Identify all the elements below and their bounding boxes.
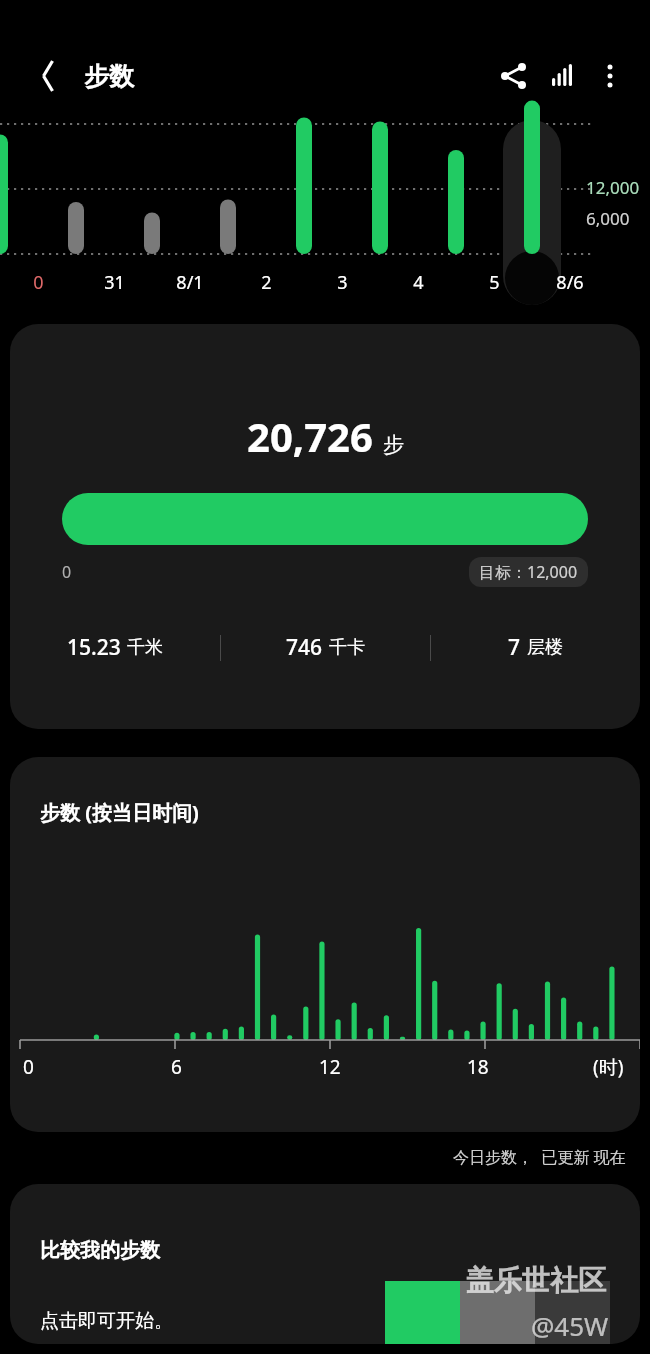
staticText: (时) xyxy=(593,1054,624,1080)
staticText: 5 xyxy=(489,270,500,295)
button[interactable]: Chart xyxy=(538,52,586,100)
button[interactable]: 步数 (按当日时间) xyxy=(10,757,640,1132)
staticText: 12 xyxy=(319,1054,341,1080)
staticText: 点击即可开始。 xyxy=(40,1309,173,1333)
staticText: 步数 (按当日时间) xyxy=(40,799,199,826)
staticText: 目标：12,000 xyxy=(479,561,578,583)
button[interactable]: Share xyxy=(490,52,538,100)
staticText: 8/6 xyxy=(556,270,584,295)
staticText: 步数 xyxy=(84,61,134,92)
staticText: 千米 xyxy=(127,636,163,659)
button[interactable]: 目标：12,000 xyxy=(479,561,578,583)
button[interactable]: 比较我的步数 xyxy=(10,1184,640,1344)
staticText: 15.23 xyxy=(67,633,121,662)
staticText: 0 xyxy=(23,1054,34,1080)
staticText: 6,000 xyxy=(586,207,630,230)
staticText: 31 xyxy=(104,270,125,295)
staticText: 0 xyxy=(33,270,44,295)
button[interactable]: 746 xyxy=(221,633,430,662)
staticText: 今日步数， 已更新 现在 xyxy=(453,1146,626,1168)
staticText: 4 xyxy=(413,270,424,295)
staticText: 746 xyxy=(286,633,323,662)
button[interactable]: 15.23 xyxy=(10,633,220,662)
staticText: 比较我的步数 xyxy=(40,1238,160,1263)
staticText: 3 xyxy=(337,270,348,295)
staticText: 步 xyxy=(383,432,404,458)
staticText: 20,726 xyxy=(247,409,373,463)
button[interactable]: 20,726 xyxy=(10,324,640,729)
staticText: 7 xyxy=(508,633,521,662)
staticText: 盖乐世社区 xyxy=(466,1263,606,1298)
staticText: 层楼 xyxy=(527,636,563,659)
button[interactable]: Back xyxy=(26,54,70,98)
button[interactable]: 12,000 xyxy=(0,112,650,312)
staticText: 12,000 xyxy=(586,176,640,199)
button[interactable]: More options xyxy=(586,52,634,100)
staticText: 2 xyxy=(261,270,272,295)
staticText: 0 xyxy=(62,561,72,583)
staticText: 8/1 xyxy=(176,270,204,295)
staticText: @45W xyxy=(531,1308,609,1343)
staticText: 千卡 xyxy=(329,636,365,659)
button[interactable]: 7 xyxy=(431,633,640,662)
staticText: 18 xyxy=(467,1054,489,1080)
staticText: 6 xyxy=(171,1054,182,1080)
